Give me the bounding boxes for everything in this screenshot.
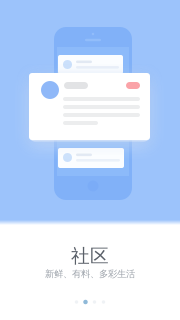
staticText: 社区 (71, 244, 109, 267)
button[interactable]: Page 3 of 4 (90, 297, 99, 306)
button[interactable]: Page 1 of 4 (72, 297, 81, 306)
staticText: 新鲜、有料、多彩生活 (45, 268, 135, 280)
button[interactable]: Page 2 of 4 (81, 297, 90, 306)
button[interactable]: Page 4 of 4 (99, 297, 108, 306)
